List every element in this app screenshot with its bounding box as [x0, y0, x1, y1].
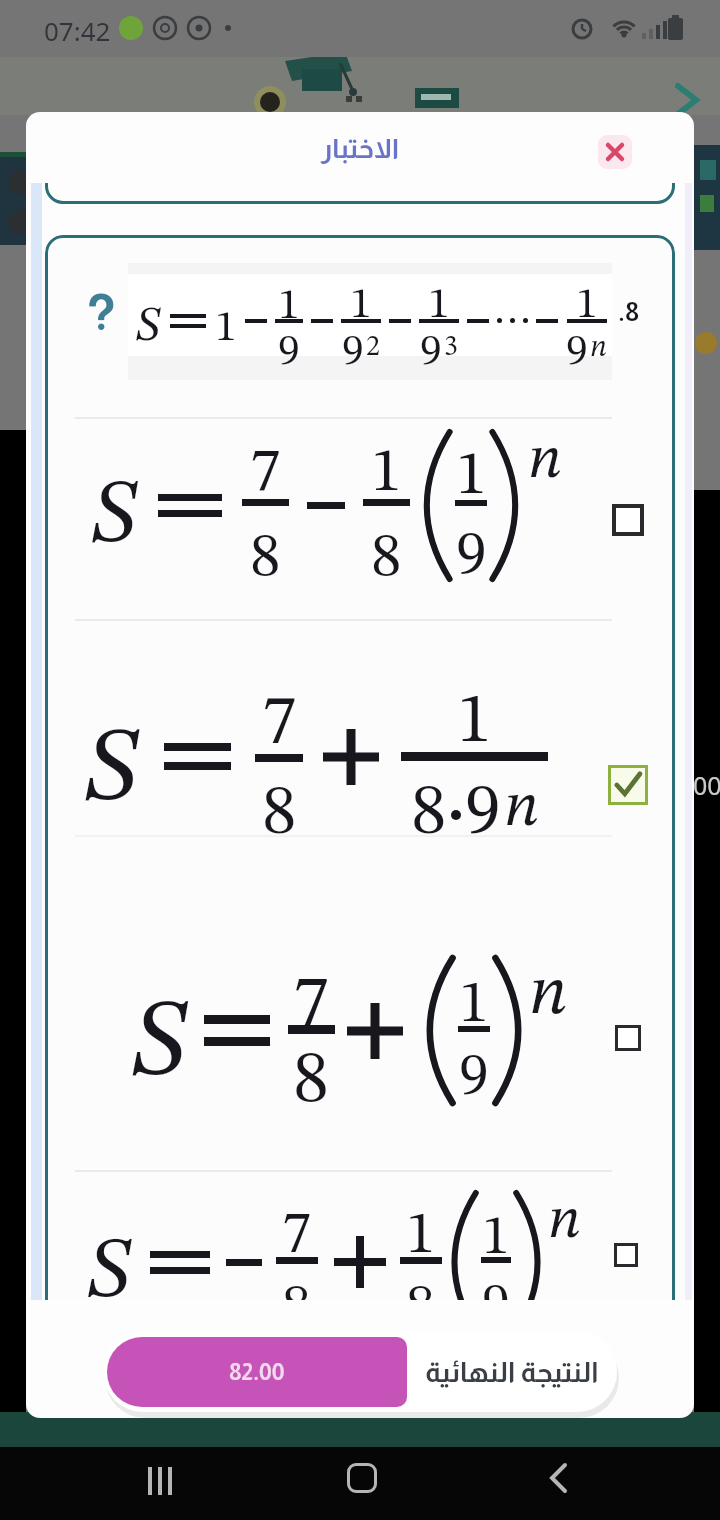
staticText: n — [548, 1193, 581, 1220]
staticText: 8 — [371, 528, 402, 568]
staticText: 8 — [262, 780, 297, 825]
button[interactable] — [614, 1243, 638, 1267]
button[interactable] — [608, 765, 648, 805]
staticText: 2 — [366, 334, 380, 348]
staticText: 1 — [482, 1210, 510, 1246]
staticText: 8 — [250, 528, 281, 568]
staticText: S — [83, 719, 140, 787]
button[interactable] — [347, 1463, 377, 1493]
staticText: S — [86, 1231, 132, 1286]
staticText: 7 — [293, 970, 330, 1017]
button[interactable] — [598, 135, 632, 169]
staticText: 9 — [278, 330, 300, 358]
staticText: 1 — [215, 306, 237, 335]
button[interactable] — [548, 1463, 572, 1495]
staticText: 7 — [262, 689, 297, 734]
staticText: 1 — [371, 443, 402, 483]
button[interactable]: S — [90, 410, 650, 600]
button[interactable] — [612, 504, 644, 536]
staticText: 1 — [456, 446, 487, 486]
staticText: 7 — [250, 443, 281, 483]
staticText: S — [130, 992, 188, 1062]
button[interactable] — [615, 1025, 641, 1051]
staticText: .8 — [618, 297, 640, 326]
staticText: 1 — [576, 283, 598, 312]
staticText: 1 — [278, 284, 300, 312]
staticText: الاختبار — [321, 134, 400, 164]
staticText: 8 — [406, 1280, 436, 1300]
staticText: 9 — [456, 526, 487, 566]
staticText: ? — [86, 285, 116, 341]
staticText: 1 — [457, 688, 492, 733]
staticText: 9 — [566, 330, 588, 358]
staticText: 00 — [693, 768, 720, 802]
staticText: 9 — [459, 1048, 489, 1087]
staticText: 9 — [342, 330, 364, 358]
staticText: 1 — [350, 283, 372, 312]
staticText: 8 — [282, 1280, 312, 1300]
button[interactable] — [148, 1467, 174, 1499]
button[interactable]: S — [130, 935, 675, 1125]
staticText: 1 — [406, 1207, 436, 1245]
staticText: 07:42 — [44, 13, 111, 48]
staticText: S — [90, 473, 138, 531]
staticText: 8 — [411, 778, 447, 825]
button[interactable] — [668, 82, 708, 118]
staticText: 3 — [444, 334, 458, 348]
button[interactable]: 82.00 — [103, 1332, 617, 1412]
button[interactable]: S — [86, 1172, 646, 1300]
staticText: 1 — [459, 975, 489, 1014]
staticText: 9 — [420, 330, 442, 358]
staticText: 8 — [293, 1045, 330, 1092]
button[interactable]: S — [83, 656, 643, 856]
staticText: 9 — [482, 1278, 510, 1300]
staticText: n — [529, 961, 568, 993]
staticText: n — [528, 431, 562, 459]
staticText: n — [590, 333, 607, 348]
staticText: 7 — [282, 1207, 312, 1245]
staticText: 82.00 — [229, 1359, 285, 1385]
staticText: 1 — [428, 283, 450, 312]
staticText: S — [135, 303, 161, 334]
staticText: النتيجة النهائية — [425, 1357, 599, 1388]
staticText: 9 — [465, 778, 501, 825]
staticText: n — [504, 778, 539, 807]
